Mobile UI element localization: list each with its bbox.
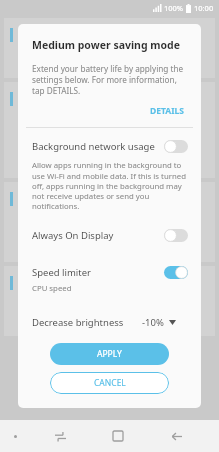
- staticText: Decrease brightness: [32, 316, 124, 329]
- staticText: Speed limiter: [32, 266, 92, 279]
- staticText: Background network usage: [32, 140, 155, 153]
- staticText: 10:00: [194, 3, 214, 13]
- staticText: Allow apps running in the background to …: [32, 160, 189, 212]
- staticText: DETAILS: [150, 105, 184, 117]
- button[interactable]: CANCEL: [50, 372, 169, 394]
- button[interactable]: Back: [147, 420, 205, 452]
- button[interactable]: DETAILS: [147, 103, 187, 119]
- button[interactable]: Background network usage: [18, 140, 201, 153]
- staticText: -10%: [142, 316, 164, 329]
- staticText: APPLY: [97, 348, 122, 360]
- staticText: Extend your battery life by applying the…: [32, 63, 187, 96]
- staticText: CANCEL: [94, 377, 126, 389]
- button[interactable]: Home: [89, 420, 147, 452]
- staticText: Medium power saving mode: [32, 38, 180, 52]
- staticText: 100%: [164, 3, 184, 13]
- button[interactable]: Recents: [31, 420, 89, 452]
- button[interactable]: APPLY: [50, 343, 169, 365]
- staticText: Always On Display: [32, 229, 114, 242]
- button[interactable]: Decrease brightness: [18, 316, 201, 329]
- button[interactable]: Always On Display: [18, 229, 201, 242]
- other: Off: [164, 140, 188, 153]
- other: Off: [164, 229, 188, 242]
- staticText: CPU speed: [32, 283, 72, 294]
- button[interactable]: Speed limiter: [18, 266, 201, 279]
- other: On: [164, 266, 188, 279]
